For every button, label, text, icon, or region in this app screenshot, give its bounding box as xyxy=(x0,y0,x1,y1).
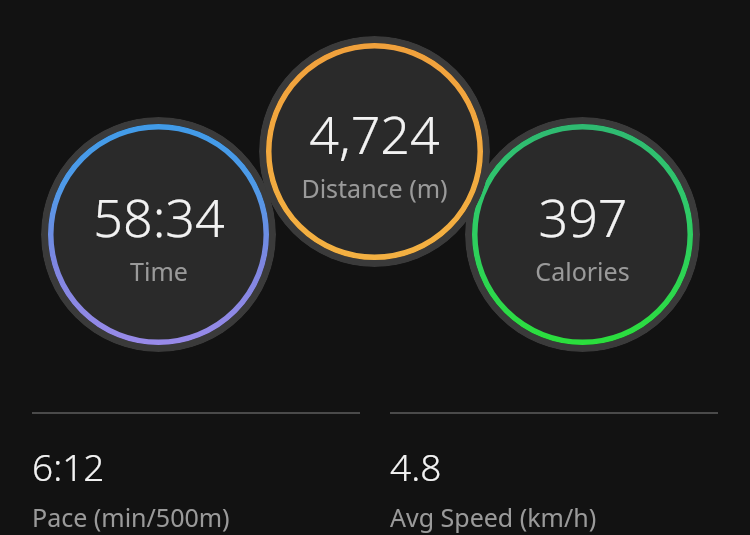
staticText: Calories xyxy=(535,254,630,288)
button[interactable]: 4.8 xyxy=(390,412,718,534)
staticText: Time xyxy=(130,254,188,288)
staticText: 58:34 xyxy=(93,181,225,252)
button[interactable]: Time 58:34 xyxy=(41,117,276,352)
staticText: 4,724 xyxy=(309,98,440,169)
staticText: Pace (min/500m) xyxy=(32,500,230,534)
staticText: 397 xyxy=(538,181,628,252)
button[interactable]: 6:12 xyxy=(32,412,360,534)
button[interactable]: Calories 397 xyxy=(465,117,700,352)
staticText: Avg Speed (km/h) xyxy=(390,500,597,534)
button[interactable]: Distance 4,724 meters xyxy=(259,36,490,267)
staticText: Distance (m) xyxy=(301,171,448,205)
staticText: 4.8 xyxy=(390,441,442,491)
staticText: 6:12 xyxy=(32,441,105,491)
